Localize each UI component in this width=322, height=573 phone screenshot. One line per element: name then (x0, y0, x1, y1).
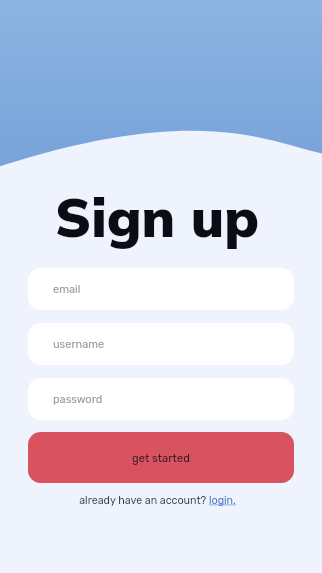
staticText: email (53, 283, 81, 296)
staticText: username (53, 338, 105, 351)
button[interactable]: already have an account? login. (79, 494, 236, 507)
staticText: Sign up (55, 183, 259, 251)
button[interactable]: email (28, 268, 294, 310)
staticText: password (53, 393, 103, 406)
button[interactable]: password (28, 378, 294, 420)
button[interactable]: username (28, 323, 294, 365)
staticText: get started (132, 452, 190, 465)
button[interactable]: get started (28, 432, 294, 483)
